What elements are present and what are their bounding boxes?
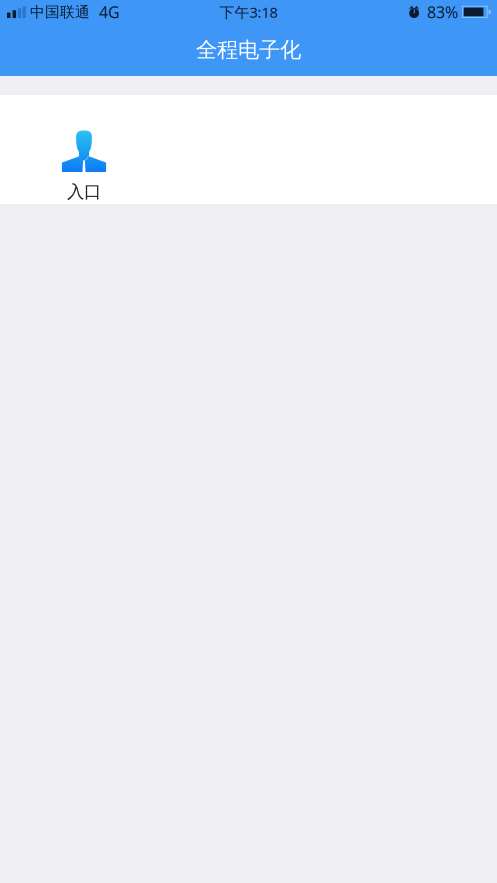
button[interactable]: 入口 (0, 95, 168, 204)
staticText: 83% (427, 1, 458, 23)
staticText: 入口 (67, 181, 101, 202)
staticText: 下午3:18 (219, 2, 277, 22)
staticText: 中国联通 (30, 3, 90, 21)
staticText: 全程电子化 (196, 37, 301, 63)
staticText: 4G (99, 1, 120, 23)
